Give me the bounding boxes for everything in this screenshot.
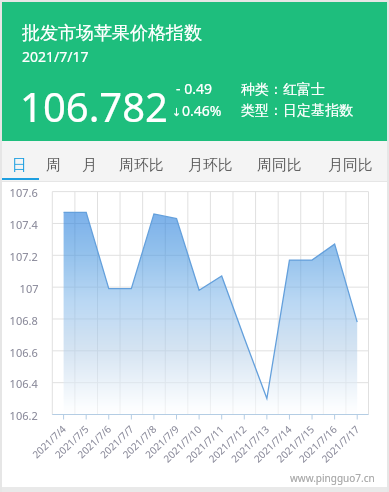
staticText: 种类：红富士 <box>241 81 325 99</box>
button[interactable]: 周 <box>36 141 71 182</box>
button[interactable]: 周同比 <box>244 141 314 182</box>
other: 苹果价格指数走势图 <box>2 182 387 487</box>
button[interactable]: 月 <box>71 141 108 182</box>
staticText: ↓ <box>172 106 182 119</box>
staticText: 周同比 <box>257 156 302 175</box>
staticText: 月同比 <box>328 156 373 175</box>
button[interactable]: 月同比 <box>314 141 387 182</box>
staticText: 周环比 <box>119 156 164 175</box>
staticText: 106.782 <box>20 79 168 133</box>
button[interactable]: 日 <box>2 141 36 182</box>
staticText: 周 <box>46 156 61 175</box>
staticText: 类型：日定基指数 <box>241 102 353 120</box>
button[interactable]: 周环比 <box>106 141 176 182</box>
staticText: 2021/7/17 <box>22 47 89 66</box>
button[interactable]: 月环比 <box>176 141 244 182</box>
staticText: 月环比 <box>188 156 233 175</box>
staticText: - 0.49 <box>176 79 212 98</box>
staticText: 日 <box>12 156 27 175</box>
staticText: 月 <box>82 156 97 175</box>
staticText: 0.46% <box>182 101 222 120</box>
staticText: 批发市场苹果价格指数 <box>22 22 202 45</box>
